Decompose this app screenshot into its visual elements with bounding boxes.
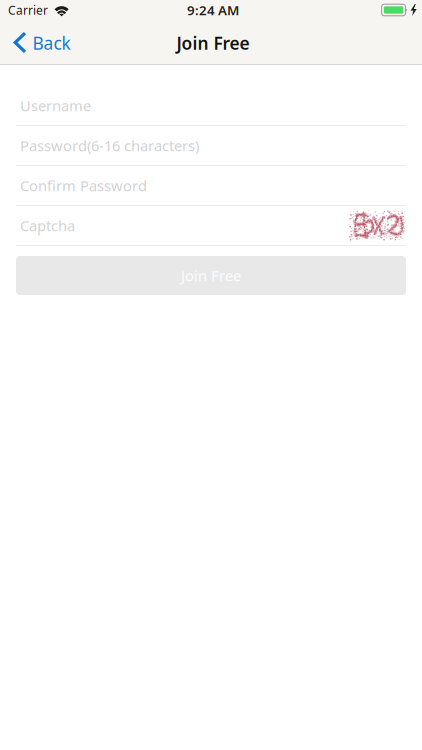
- staticText: Captcha: [20, 216, 75, 235]
- staticText: Username: [20, 96, 91, 115]
- staticText: 9:24 AM: [187, 1, 239, 19]
- staticText: Carrier: [8, 2, 48, 18]
- button[interactable]: Captcha: [16, 206, 348, 245]
- button[interactable]: Refresh captcha: [348, 206, 406, 245]
- staticText: Password(6-16 characters): [20, 136, 199, 155]
- staticText: Confirm Password: [20, 176, 147, 195]
- button[interactable]: Username: [16, 86, 406, 125]
- staticText: Join Free: [176, 31, 249, 54]
- button[interactable]: Back: [0, 20, 80, 65]
- staticText: Join Free: [181, 266, 241, 285]
- button[interactable]: Confirm Password: [16, 166, 406, 205]
- staticText: Back: [32, 31, 70, 54]
- button[interactable]: Password(6-16 characters): [16, 126, 406, 165]
